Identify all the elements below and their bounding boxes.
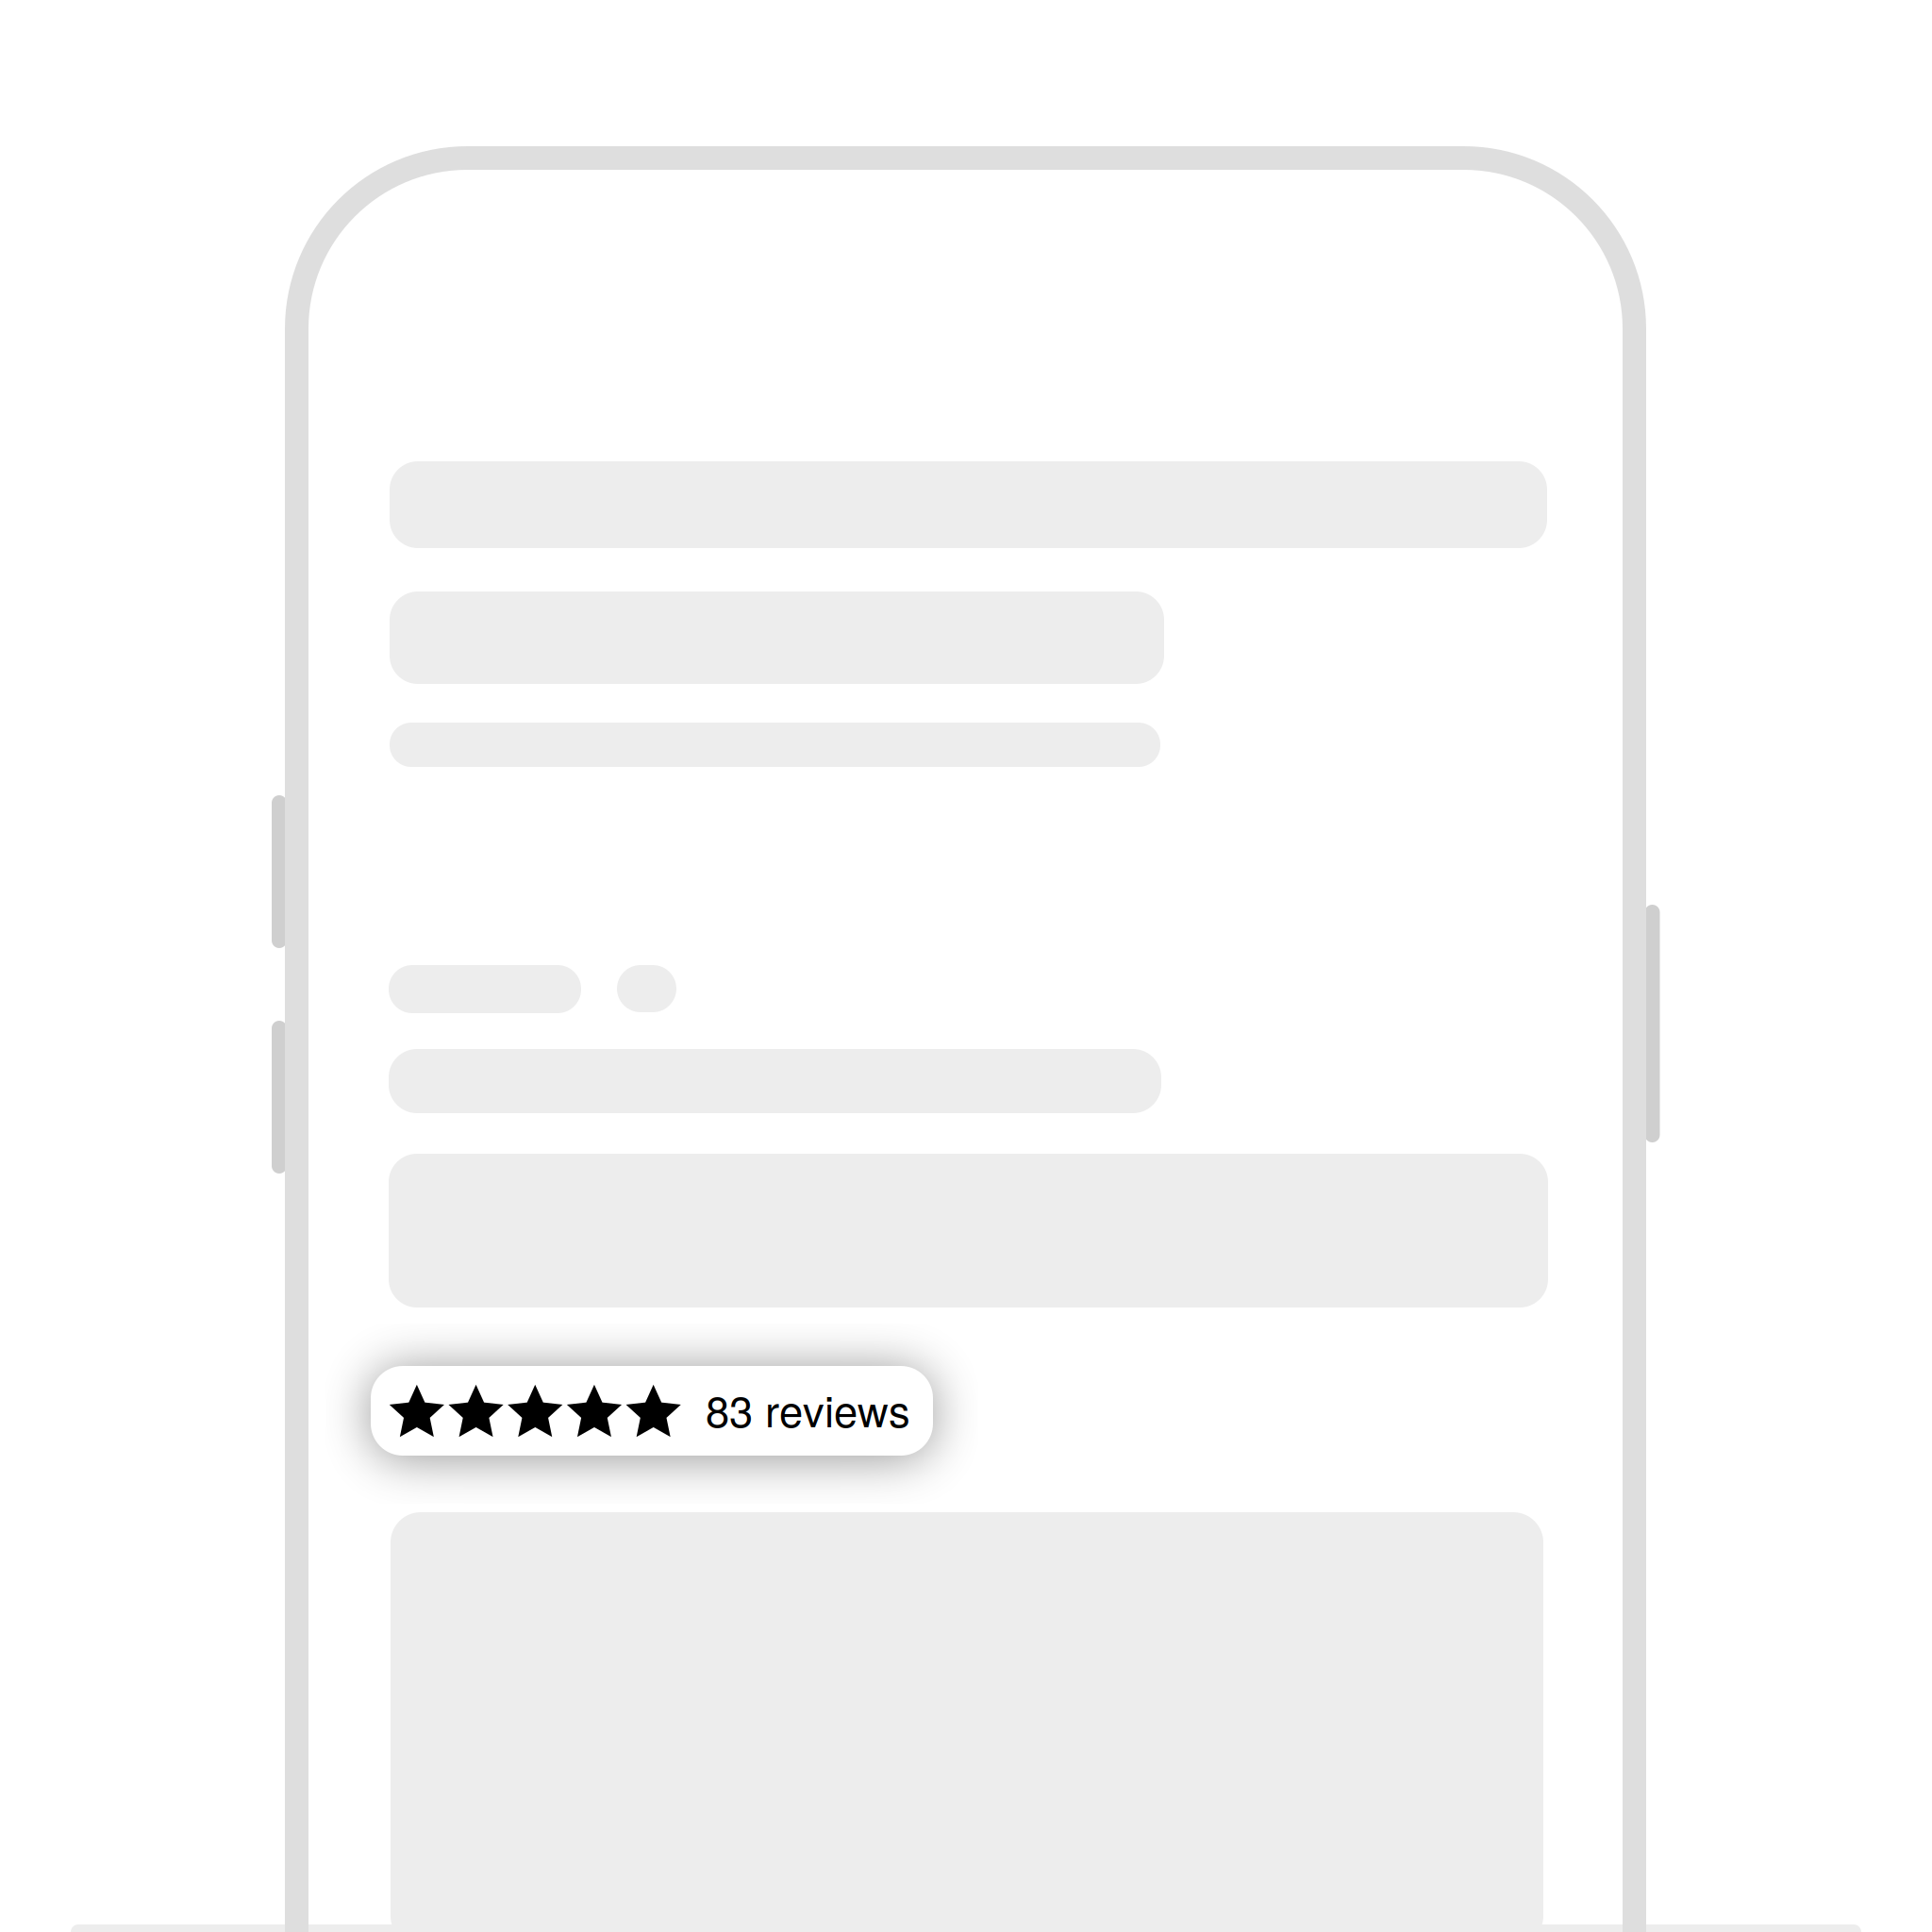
button[interactable]: Rated 5 out of 5 stars, 83 reviews: [371, 1366, 933, 1456]
staticText: 83 reviews: [706, 1378, 910, 1439]
